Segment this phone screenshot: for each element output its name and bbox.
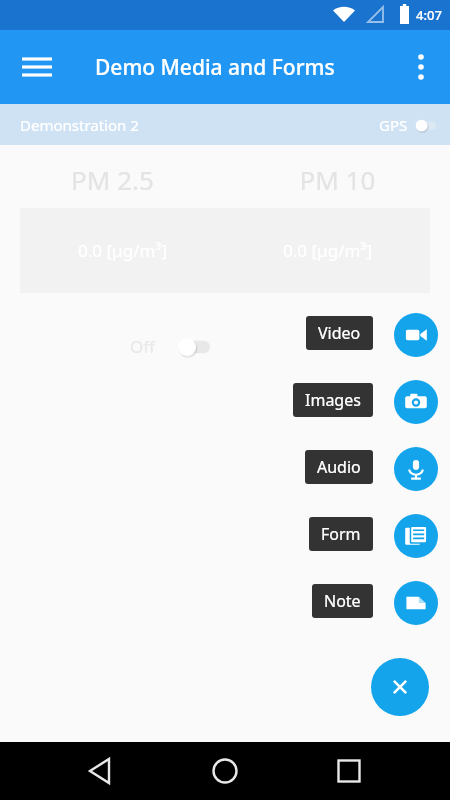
staticText: 4:07 xyxy=(416,6,442,24)
button[interactable]: Audio xyxy=(394,447,438,491)
button[interactable]: Video xyxy=(306,316,373,350)
staticText: 0.0 [µg/m³] xyxy=(20,239,225,262)
button[interactable]: Home xyxy=(196,742,254,800)
staticText: PM 10 xyxy=(225,162,450,197)
staticText: Audio xyxy=(317,456,361,478)
button[interactable]: Images xyxy=(394,380,438,424)
button[interactable]: More options xyxy=(397,43,445,91)
button[interactable]: Audio xyxy=(305,450,373,484)
staticText: Demo Media and Forms xyxy=(95,53,335,82)
staticText: Demonstration 2 xyxy=(20,115,139,135)
button[interactable]: Recent apps xyxy=(320,742,378,800)
staticText: Images xyxy=(305,389,361,411)
button[interactable]: Form xyxy=(394,514,438,558)
staticText: 0.0 [µg/m³] xyxy=(225,239,430,262)
staticText: GPS xyxy=(379,115,408,135)
button[interactable]: Note xyxy=(394,581,438,625)
button[interactable]: Close menu xyxy=(371,658,429,716)
button[interactable]: Back xyxy=(75,742,174,800)
button[interactable]: Open navigation drawer xyxy=(13,43,61,91)
button[interactable]: Form xyxy=(309,517,373,551)
button[interactable]: Off xyxy=(130,335,210,358)
staticText: PM 2.5 xyxy=(0,162,225,197)
staticText: Form xyxy=(321,523,361,545)
staticText: Note xyxy=(324,590,361,612)
staticText: Off xyxy=(130,335,155,358)
staticText: Video xyxy=(318,322,361,344)
button[interactable]: GPS xyxy=(379,115,436,135)
button[interactable]: Images xyxy=(293,383,373,417)
button[interactable]: Video xyxy=(394,313,438,357)
button[interactable]: Note xyxy=(312,584,373,618)
